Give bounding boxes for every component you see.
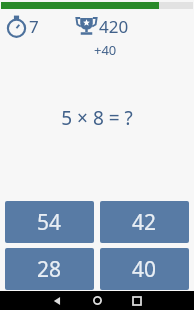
staticText: 420 (99, 15, 129, 38)
staticText: 28 (37, 255, 62, 284)
button[interactable]: 54 (5, 201, 94, 243)
staticText: 5 × 8 = ? (61, 105, 133, 131)
staticText: 7 (29, 15, 39, 38)
button[interactable]: 40 (100, 248, 189, 290)
button[interactable]: Score (74, 14, 129, 39)
button[interactable]: 28 (5, 248, 94, 290)
staticText: 40 (132, 255, 157, 284)
button[interactable]: Recent apps (124, 291, 150, 310)
button[interactable]: Back (44, 291, 70, 310)
staticText: 54 (37, 208, 62, 237)
staticText: +40 (94, 41, 117, 59)
button[interactable]: Timer (3, 14, 40, 39)
staticText: 42 (132, 208, 157, 237)
button[interactable]: Home (84, 291, 110, 310)
button[interactable]: 42 (100, 201, 189, 243)
